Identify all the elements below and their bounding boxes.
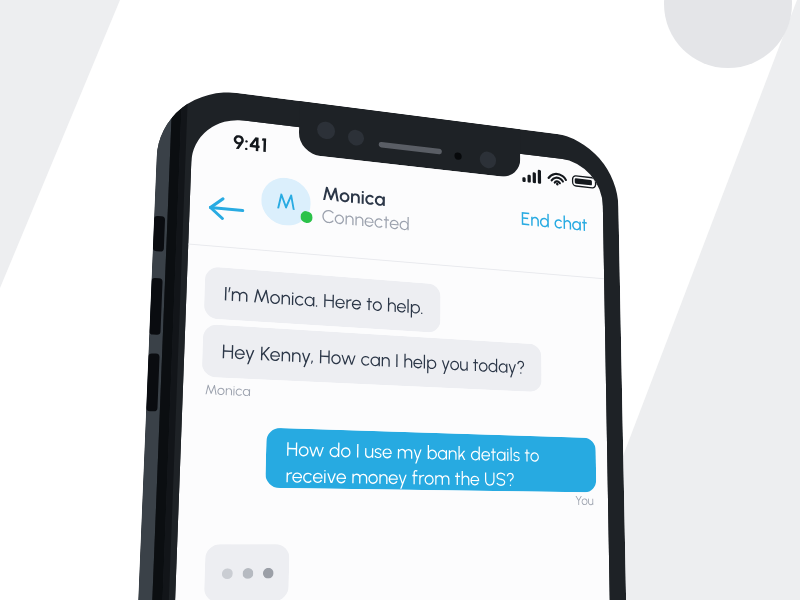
staticText: Monica <box>322 182 386 211</box>
staticText: You <box>575 493 595 508</box>
staticText: Hey Kenny, How can I help you today? <box>221 340 526 378</box>
staticText: How do I use my bank details to receive … <box>285 437 540 490</box>
staticText: I’m Monica. Here to help. <box>223 282 424 318</box>
staticText: End chat <box>521 208 588 236</box>
button[interactable]: Back <box>201 183 251 234</box>
staticText: Connected <box>321 205 411 235</box>
button[interactable]: End chat <box>518 202 590 241</box>
staticText: M <box>276 188 297 216</box>
staticText: Monica <box>204 381 251 400</box>
staticText: 9:41 <box>233 130 269 158</box>
